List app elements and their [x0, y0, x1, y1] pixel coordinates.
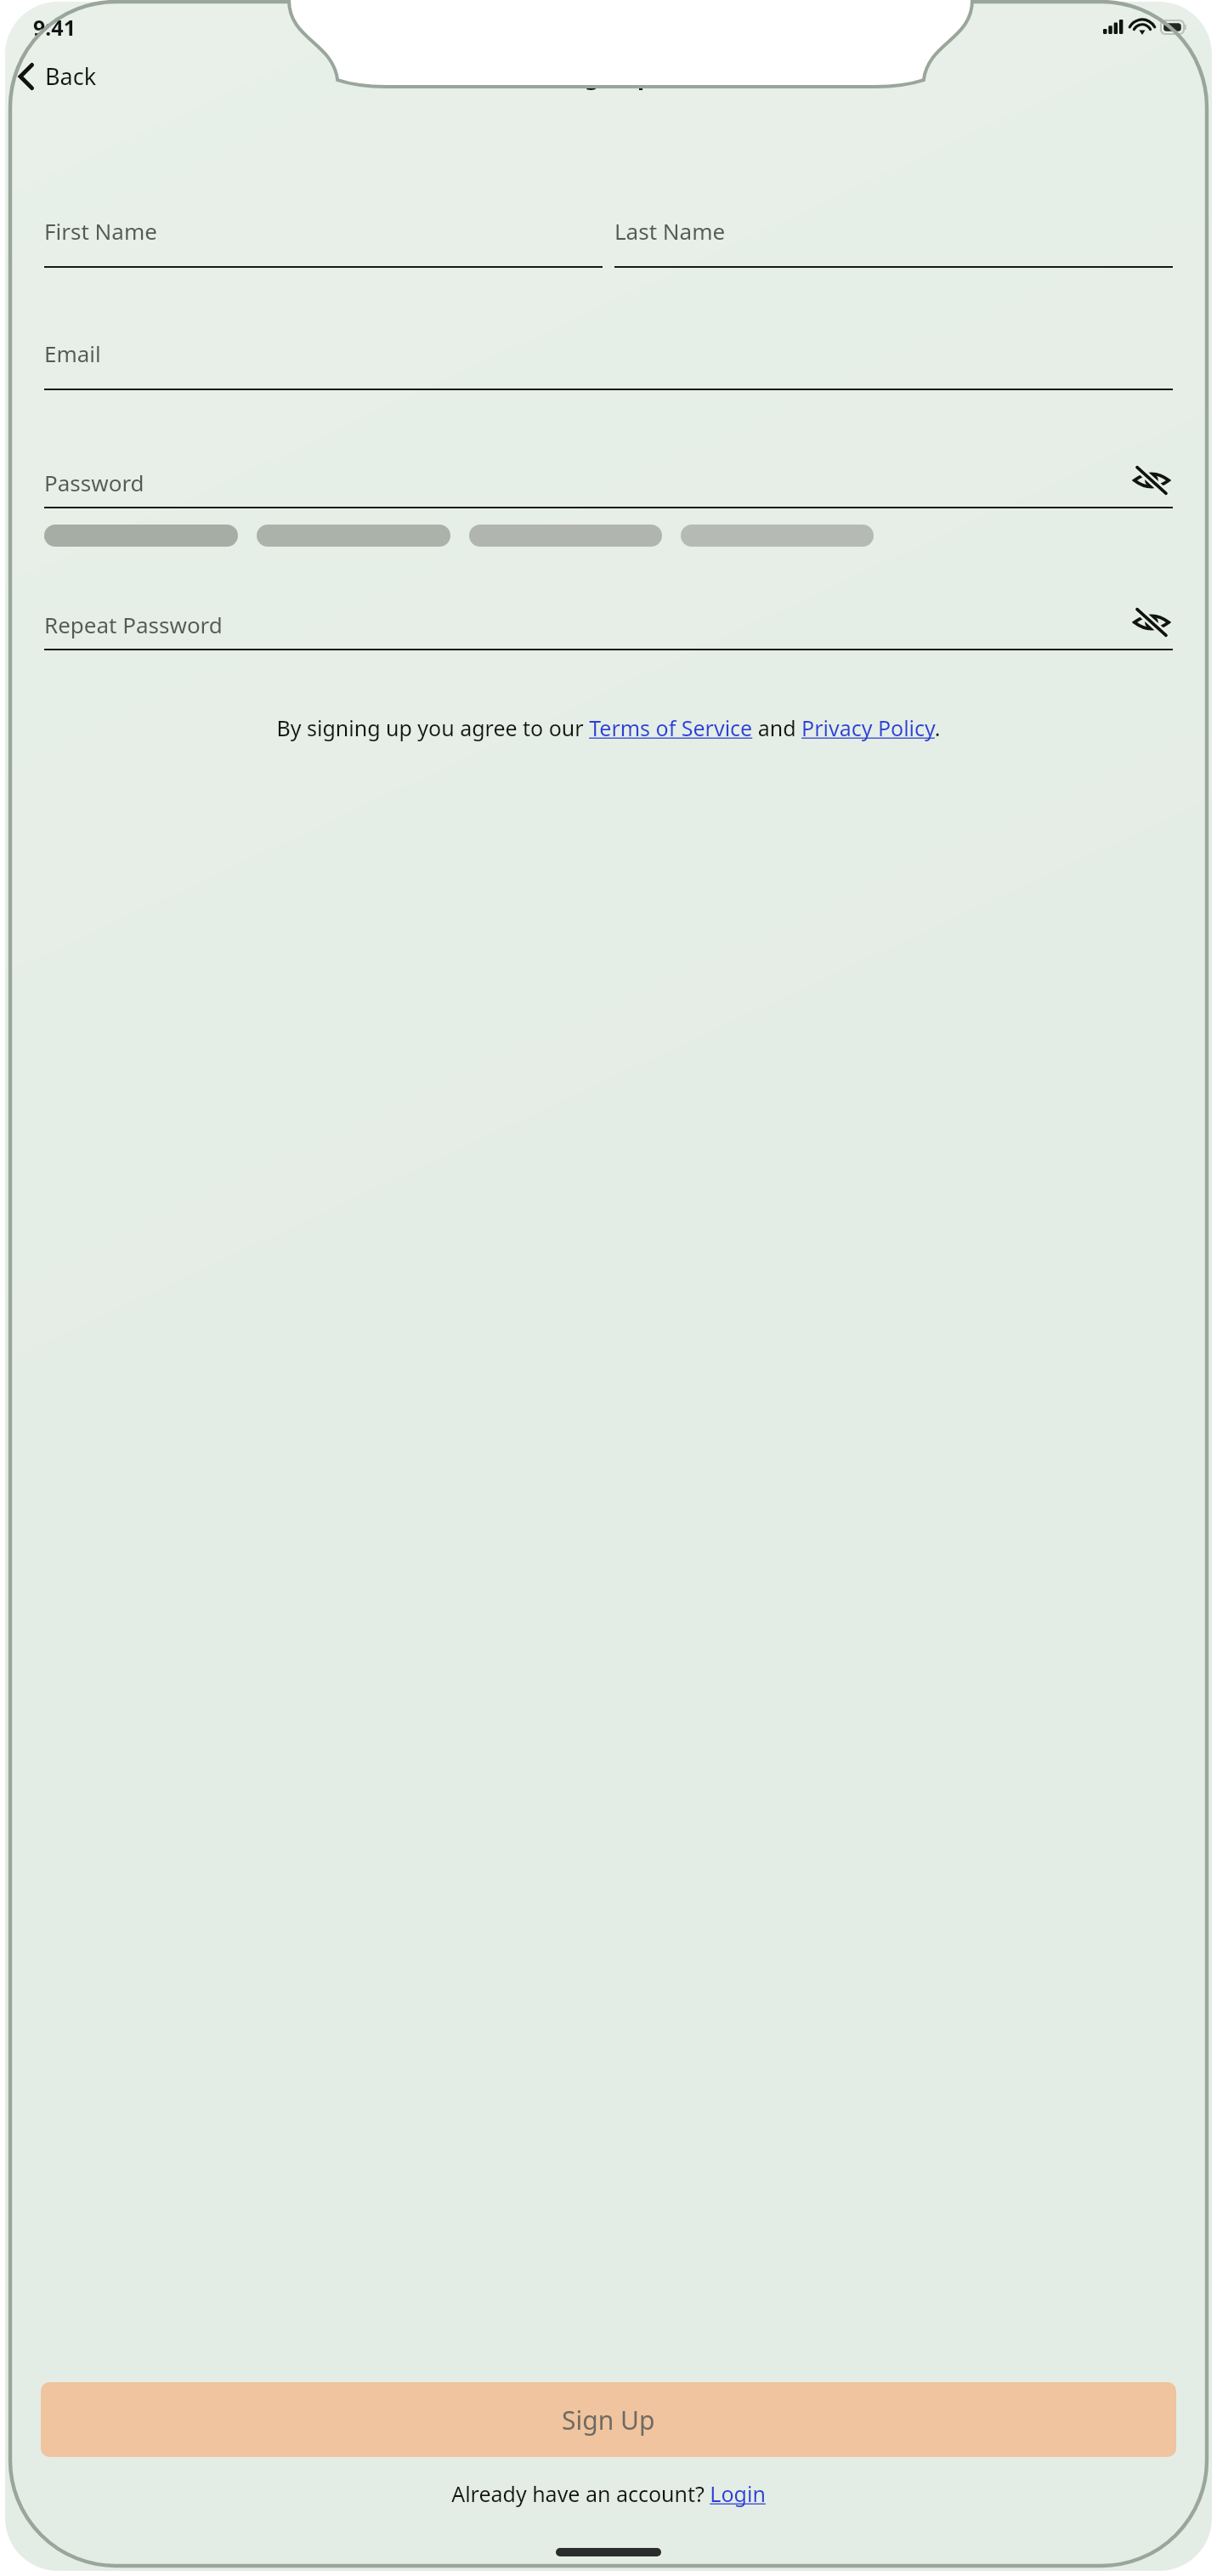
staticText: Sign Up [562, 2403, 655, 2437]
staticText: First Name [44, 216, 157, 246]
staticText: Last Name [614, 216, 726, 246]
button[interactable]: First Name [44, 216, 603, 268]
button[interactable]: Repeat Password [44, 603, 1173, 645]
button[interactable]: Already have an account? Login [5, 2479, 1212, 2508]
button[interactable]: Last Name [614, 216, 1173, 268]
staticText: Already have an account? Login [451, 2479, 766, 2508]
staticText: Sign Up [565, 60, 653, 92]
staticText: 9:41 [33, 13, 76, 42]
staticText: Repeat Password [44, 610, 223, 639]
staticText: Back [45, 60, 97, 92]
button[interactable]: Show repeat password [1130, 601, 1173, 644]
button[interactable]: Password [44, 461, 1173, 503]
staticText: Password [44, 468, 144, 497]
button[interactable]: Show password [1130, 459, 1173, 502]
button[interactable]: Email [44, 338, 1173, 390]
button[interactable]: By signing up you agree to our Terms of … [63, 713, 1154, 742]
button[interactable]: Sign Up [41, 2382, 1176, 2457]
staticText: By signing up you agree to our Terms of … [63, 713, 1154, 742]
staticText: Email [44, 338, 101, 368]
button[interactable]: Back [5, 55, 110, 97]
